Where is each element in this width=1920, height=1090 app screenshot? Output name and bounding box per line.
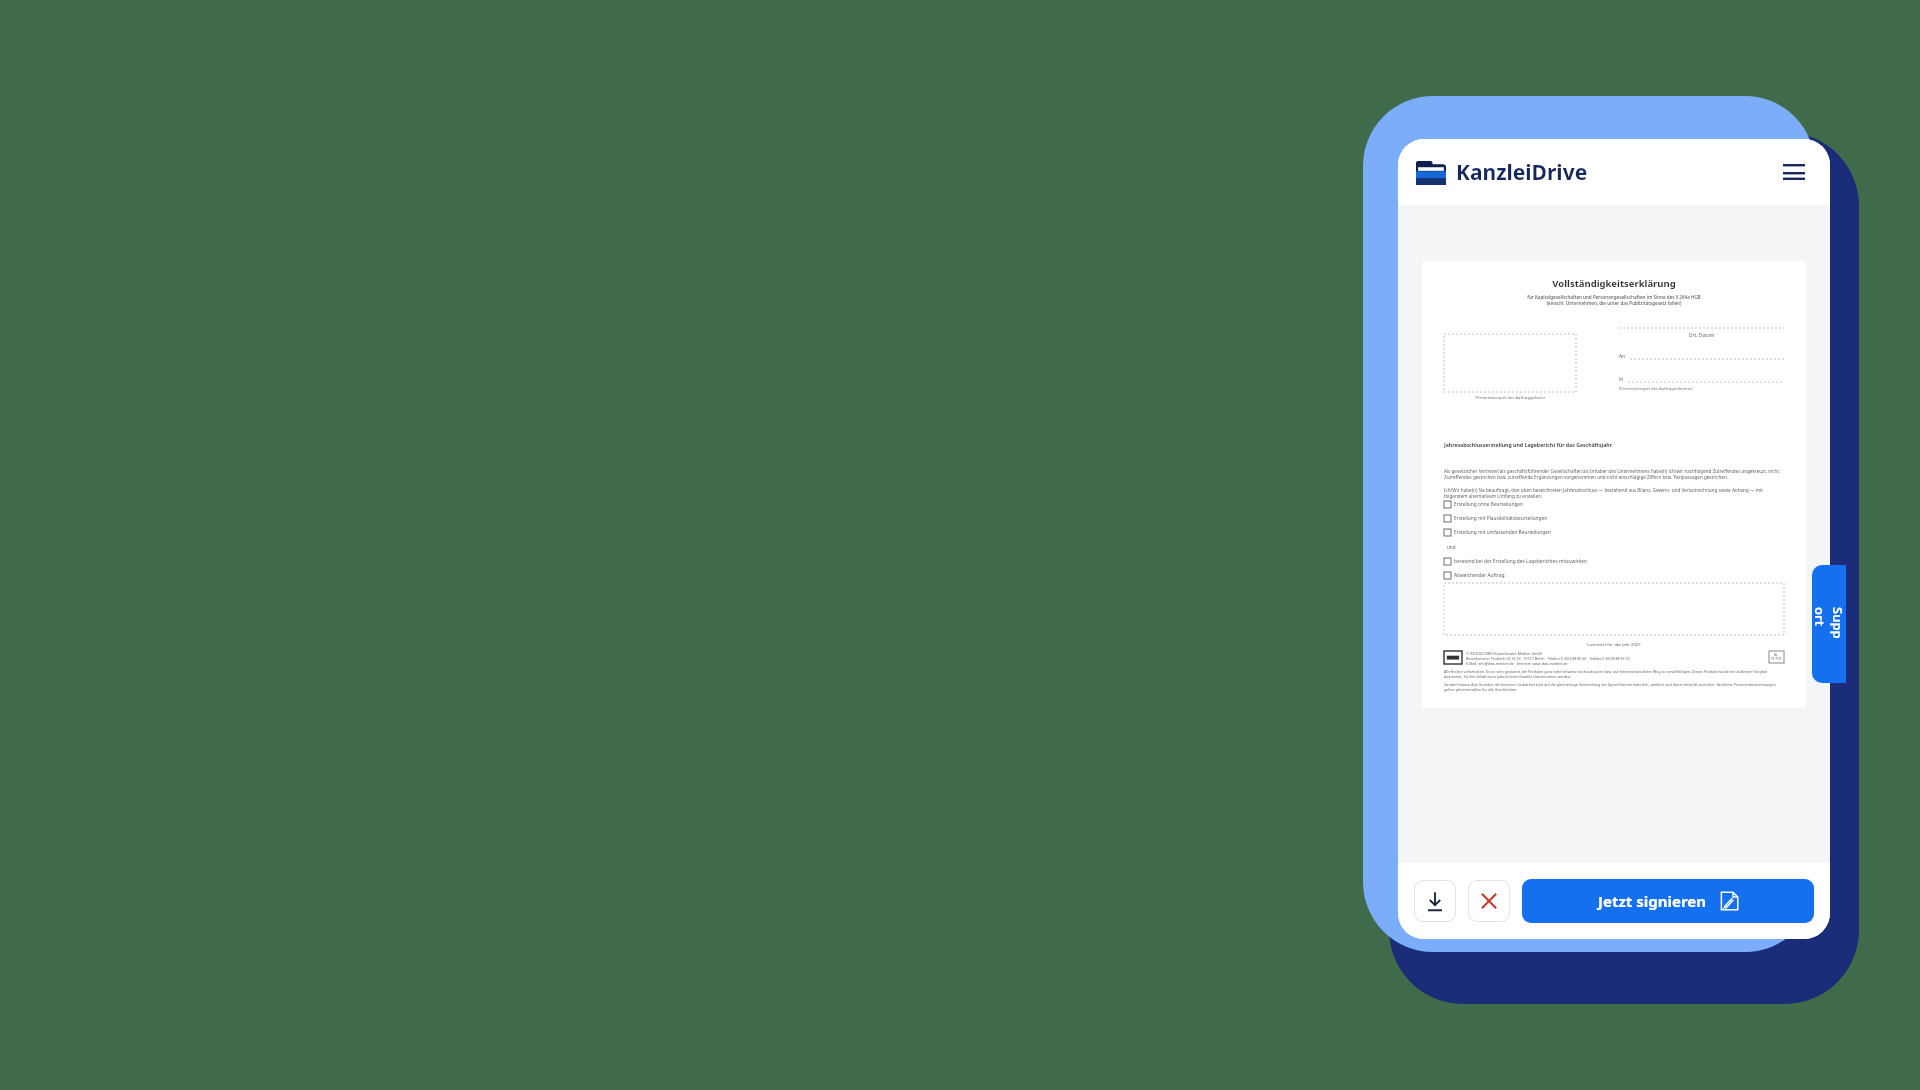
staticText: Ort, Datum: [1619, 332, 1784, 339]
staticText: (Firmenstempel des Auftraggebers): [1444, 395, 1576, 401]
staticText: Ich/Wir habe(n) Sie beauftragt, den oben…: [1444, 487, 1784, 499]
staticText: Vollständigkeitserklärung: [1444, 277, 1784, 290]
staticText: E-Mail: info@dws-medien.de · Internet: w…: [1466, 661, 1568, 666]
staticText: beratend bei der Erstellung des Lageberi…: [1454, 558, 1587, 565]
staticText: KanzleiDrive: [1456, 158, 1588, 187]
button[interactable]: Abweichender Auftrag:: [1444, 572, 1784, 579]
staticText: Erstellung mit umfassenden Beurteilungen: [1454, 529, 1551, 536]
staticText: Als gesetzlicher Vertreter/als geschäfts…: [1444, 468, 1784, 480]
button[interactable]: Jetzt signieren: [1522, 879, 1814, 923]
button[interactable]: Ablehnen: [1468, 880, 1510, 922]
button[interactable]: Erstellung mit umfassenden Beurteilungen: [1444, 529, 1784, 536]
staticText: An: [1619, 353, 1626, 360]
staticText: Erstellung mit Plausibilitätsbeurteilung…: [1454, 515, 1548, 522]
staticText: Erstellung ohne Beurteilungen: [1454, 501, 1523, 508]
button[interactable]: beratend bei der Erstellung des Lageberi…: [1444, 558, 1784, 565]
staticText: Alle Rechte vorbehalten. Es ist nicht ge…: [1444, 669, 1784, 679]
button[interactable]: Erstellung mit Plausibilitätsbeurteilung…: [1444, 515, 1784, 522]
button[interactable]: Download: [1414, 880, 1456, 922]
staticText: Jetzt signieren: [1598, 891, 1707, 911]
staticText: (Firmenstempel des Auftragnehmers): [1619, 386, 1693, 392]
staticText: für Kapitalgesellschaften und Personenge…: [1444, 294, 1784, 300]
staticText: Lizenziert für das Jahr 2025: [1444, 642, 1784, 648]
staticText: Genderhinweis: Aus Gründen der besseren …: [1444, 682, 1784, 692]
staticText: in: [1619, 376, 1624, 383]
staticText: © 03/2023 DWS Steuerberater Medien GmbH: [1466, 651, 1543, 656]
staticText: 91 PDF: [1771, 657, 1782, 661]
staticText: Nr.: [1774, 653, 1779, 657]
staticText: Jahresabschlusserstellung und Lageberich…: [1444, 441, 1612, 448]
button[interactable]: Menu: [1776, 154, 1812, 190]
staticText: Bestellservice: Postfach 02 35 53 · 1012…: [1466, 656, 1630, 661]
staticText: Abweichender Auftrag:: [1454, 572, 1506, 579]
staticText: (einschl. Unternehmen, die unter das Pub…: [1444, 300, 1784, 306]
staticText: und: [1447, 544, 1456, 550]
button[interactable]: Erstellung ohne Beurteilungen: [1444, 501, 1784, 508]
button[interactable]: KanzleiDrive: [1416, 152, 1588, 193]
button[interactable]: Support: [1812, 565, 1846, 683]
staticText: Support: [1812, 607, 1846, 641]
